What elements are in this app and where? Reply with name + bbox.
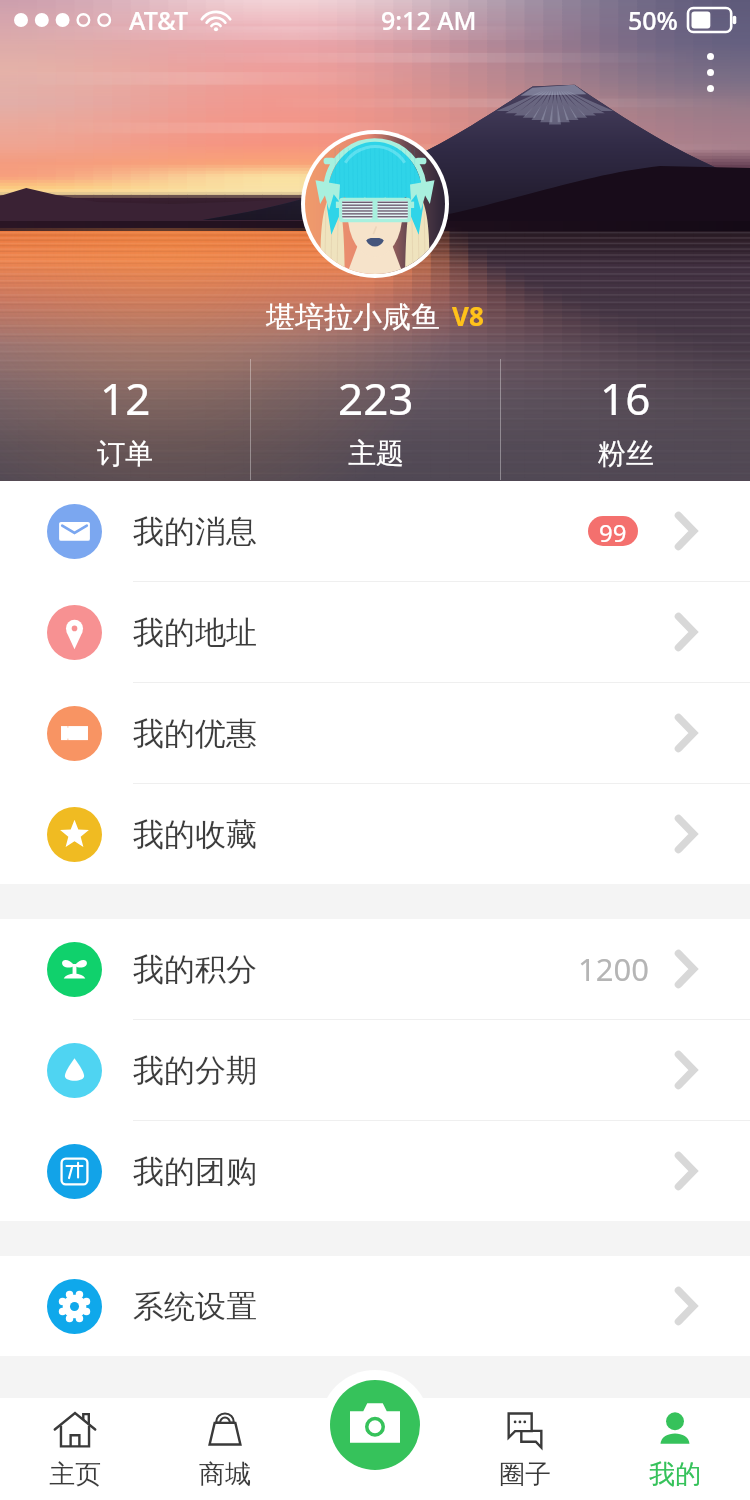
staticText: 223	[338, 368, 414, 428]
staticText: 我的分期	[133, 1051, 257, 1090]
button[interactable]: 我的积分	[0, 919, 750, 1019]
button[interactable]: 我的收藏	[0, 784, 750, 884]
button[interactable]: 16	[501, 358, 750, 480]
staticText: 50%	[628, 3, 678, 37]
staticText: 12	[100, 368, 151, 428]
button[interactable]: 主页	[0, 1398, 150, 1500]
button[interactable]: 12	[0, 358, 250, 480]
button[interactable]	[305, 134, 445, 274]
staticText: 系统设置	[133, 1287, 257, 1326]
button[interactable]: 圈子	[450, 1398, 600, 1500]
staticText: V8	[452, 298, 484, 333]
staticText: 堪培拉小咸鱼	[266, 299, 440, 336]
staticText: 我的积分	[133, 950, 257, 989]
staticText: 16	[600, 368, 651, 428]
staticText: 99	[599, 516, 627, 546]
staticText: 主题	[348, 436, 404, 471]
staticText: 我的地址	[133, 613, 257, 652]
staticText: 我的优惠	[133, 714, 257, 753]
button[interactable]: 我的	[600, 1398, 750, 1500]
button[interactable]: 我的消息	[0, 481, 750, 581]
staticText: 我的	[649, 1458, 701, 1491]
staticText: 商城	[199, 1458, 251, 1491]
button[interactable]: 商城	[150, 1398, 300, 1500]
button[interactable]: 我的地址	[0, 582, 750, 682]
staticText: 9:12 AM	[381, 3, 477, 37]
button[interactable]: More options	[678, 40, 742, 104]
staticText: AT&T	[129, 3, 189, 37]
button[interactable]: 我的团购	[0, 1121, 750, 1221]
button[interactable]: 我的优惠	[0, 683, 750, 783]
staticText: 1200	[578, 948, 649, 990]
staticText: 主页	[49, 1458, 101, 1491]
staticText: 订单	[97, 436, 153, 471]
button[interactable]: 系统设置	[0, 1256, 750, 1356]
staticText: 我的收藏	[133, 815, 257, 854]
staticText: 粉丝	[598, 436, 654, 471]
staticText: 我的消息	[133, 512, 257, 551]
button[interactable]: 我的分期	[0, 1020, 750, 1120]
staticText: 圈子	[499, 1458, 551, 1491]
staticText: 我的团购	[133, 1152, 257, 1191]
button[interactable]: Camera	[330, 1380, 420, 1470]
button[interactable]: 223	[251, 358, 500, 480]
